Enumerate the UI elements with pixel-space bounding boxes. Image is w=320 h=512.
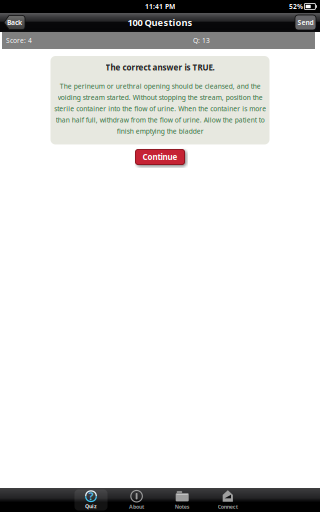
- button[interactable]: Continue: [135, 149, 184, 164]
- staticText: Send: [297, 18, 313, 27]
- staticText: Back: [7, 18, 22, 27]
- staticText: ?: [88, 489, 93, 503]
- staticText: Continue: [142, 152, 177, 162]
- staticText: The perineum or urethral opening should …: [54, 82, 266, 135]
- button[interactable]: Send: [295, 15, 316, 30]
- staticText: Quiz: [85, 503, 97, 510]
- staticText: Connect: [218, 503, 238, 510]
- staticText: About: [129, 503, 144, 510]
- staticText: Notes: [175, 503, 190, 510]
- button[interactable]: Connect: [211, 489, 244, 510]
- staticText: Q: 13: [193, 36, 210, 45]
- staticText: The correct answer is TRUE.: [105, 62, 214, 73]
- button[interactable]: ?: [74, 489, 107, 510]
- staticText: 11:41 PM: [145, 2, 175, 11]
- button[interactable]: Back: [4, 15, 25, 29]
- button[interactable]: About: [120, 489, 153, 510]
- staticText: Score: 4: [6, 36, 32, 45]
- button[interactable]: Notes: [166, 489, 199, 510]
- staticText: 100 Questions: [127, 16, 192, 29]
- staticText: 52%: [289, 2, 303, 11]
